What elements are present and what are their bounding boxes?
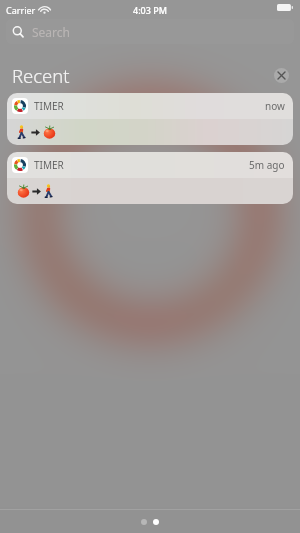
staticText: 5m ago [249,158,285,172]
staticText: TIMER [34,158,64,172]
staticText: now [265,99,285,113]
staticText: 4:03 PM [133,4,167,16]
button[interactable]: TIMER [7,152,293,204]
button[interactable]: Search [6,19,294,44]
staticText: Recent [12,63,70,88]
button[interactable]: Clear [274,68,289,83]
staticText: Search [32,24,70,40]
button[interactable]: TIMER [7,93,293,145]
staticText: TIMER [34,99,64,113]
staticText: Carrier [6,4,36,16]
